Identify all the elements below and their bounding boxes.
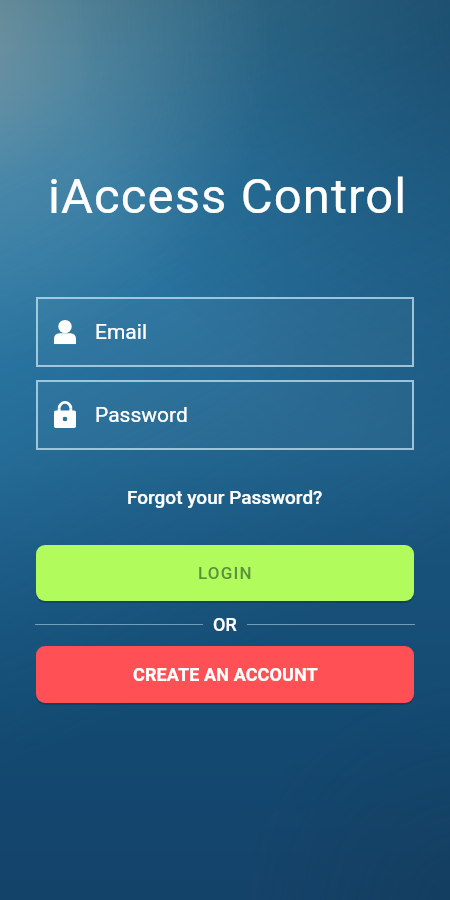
staticText: Password (95, 403, 188, 428)
button[interactable]: LOGIN (36, 545, 414, 601)
staticText: Email (95, 320, 147, 345)
button[interactable]: Forgot your Password? (119, 484, 331, 510)
staticText: CREATE AN ACCOUNT (133, 664, 318, 685)
staticText: LOGIN (198, 563, 253, 583)
button[interactable]: CREATE AN ACCOUNT (36, 646, 414, 703)
button[interactable]: Email input field (36, 297, 414, 367)
staticText: OR (213, 614, 237, 635)
staticText: Forgot your Password? (127, 486, 323, 508)
button[interactable]: Password input field (36, 380, 414, 450)
staticText: iAccess Control (48, 168, 408, 225)
